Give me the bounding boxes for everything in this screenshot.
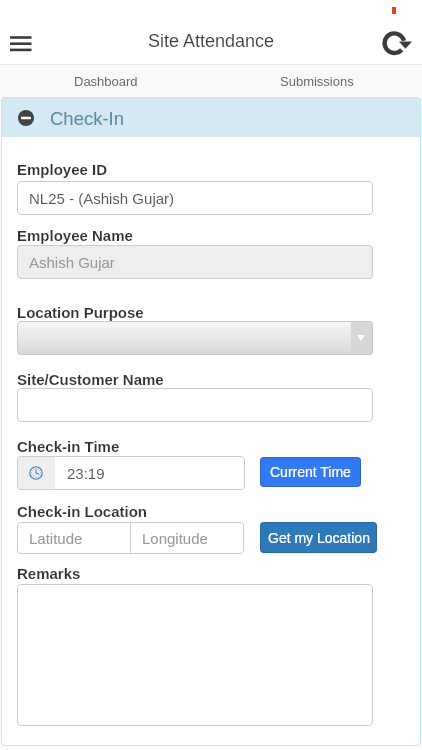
button[interactable]: Dashboard bbox=[0, 65, 211, 97]
staticText: Employee ID bbox=[17, 161, 108, 178]
staticText: Submissions bbox=[280, 74, 354, 89]
button[interactable]: Check-In bbox=[1, 97, 421, 137]
button[interactable]: Menu bbox=[0, 23, 42, 63]
staticText: NL25 - (Ashish Gujar) bbox=[29, 190, 175, 207]
staticText: Latitude bbox=[29, 530, 83, 547]
staticText: Get my Location bbox=[268, 530, 370, 546]
button[interactable]: Remarks bbox=[17, 584, 373, 726]
staticText: 23:19 bbox=[67, 465, 105, 482]
staticText: Site Attendance bbox=[0, 31, 422, 51]
button[interactable]: Ashish Gujar bbox=[17, 245, 373, 279]
button[interactable]: NL25 - (Ashish Gujar) bbox=[17, 181, 373, 215]
staticText: Check-in Location bbox=[17, 503, 148, 520]
button[interactable]: Current Time bbox=[260, 457, 361, 487]
staticText: Site/Customer Name bbox=[17, 371, 164, 388]
button[interactable] bbox=[17, 388, 373, 422]
button[interactable]: Latitude bbox=[17, 522, 131, 554]
button[interactable]: Submissions bbox=[211, 65, 422, 97]
staticText: Check-in Time bbox=[17, 438, 120, 455]
staticText: Longitude bbox=[142, 530, 208, 547]
button[interactable]: Longitude bbox=[130, 522, 244, 554]
staticText: Employee Name bbox=[17, 227, 133, 244]
button[interactable]: Pick time bbox=[17, 456, 55, 490]
staticText: Current Time bbox=[270, 464, 351, 480]
button[interactable]: Select location purpose bbox=[17, 321, 373, 355]
button[interactable]: Get my Location bbox=[260, 522, 377, 553]
staticText: Remarks bbox=[17, 565, 81, 582]
button[interactable]: Refresh bbox=[374, 23, 414, 63]
button[interactable]: 23:19 bbox=[55, 456, 245, 490]
staticText: Ashish Gujar bbox=[29, 254, 115, 271]
staticText: Check-In bbox=[50, 108, 125, 129]
staticText: Location Purpose bbox=[17, 304, 144, 321]
staticText: Dashboard bbox=[74, 74, 138, 89]
